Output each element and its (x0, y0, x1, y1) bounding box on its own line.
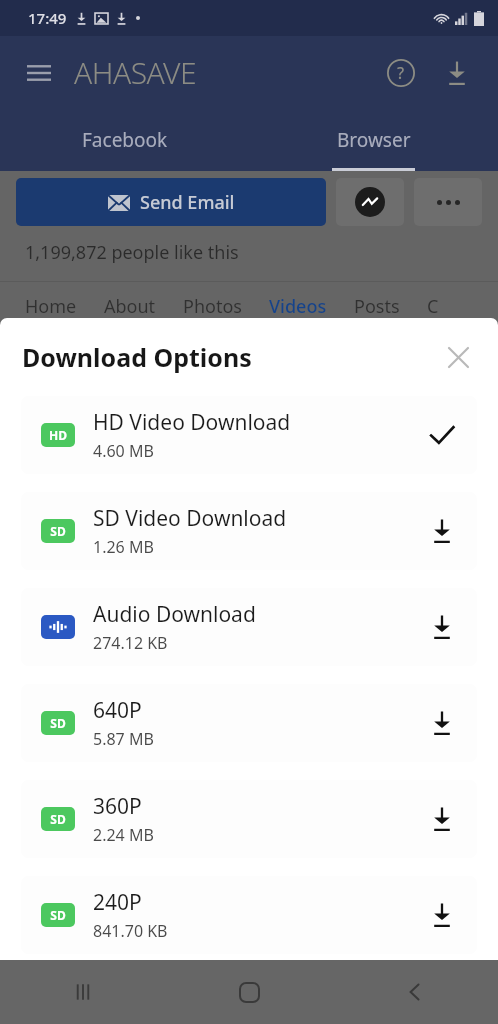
staticText: HD (49, 427, 67, 443)
button[interactable]: Recents (0, 960, 166, 1024)
button[interactable]: Home (166, 960, 332, 1024)
staticText: 841.70 KB (93, 920, 168, 942)
staticText: Facebook (82, 127, 168, 153)
other: Download (413, 790, 471, 848)
button[interactable]: SD (21, 492, 477, 570)
staticText: 640P (93, 696, 142, 725)
staticText: 360P (93, 792, 142, 821)
button[interactable]: SD (21, 684, 477, 762)
staticText: SD (50, 715, 66, 731)
staticText: 1,199,872 people like this (25, 240, 239, 265)
button[interactable]: Help (382, 54, 420, 92)
staticText: SD (50, 523, 66, 539)
staticText: HD Video Download (93, 408, 291, 437)
other: Download (413, 694, 471, 752)
button[interactable]: Audio Download (21, 588, 477, 666)
button[interactable]: SD (21, 876, 477, 954)
staticText: Audio Download (93, 600, 256, 629)
other: Download (413, 886, 471, 944)
button[interactable]: Send Email (16, 178, 326, 226)
staticText: Send Email (140, 190, 235, 215)
button[interactable]: Messenger (336, 178, 404, 226)
button[interactable]: Close (438, 337, 478, 377)
staticText: Photos (183, 294, 242, 319)
staticText: Download Options (22, 340, 252, 374)
staticText: 17:49 (28, 8, 67, 28)
staticText: SD Video Download (93, 504, 287, 533)
staticText: Home (25, 294, 77, 319)
button[interactable]: Menu (22, 56, 56, 90)
staticText: SD (50, 811, 66, 827)
staticText: 240P (93, 888, 142, 917)
staticText: SD (50, 907, 66, 923)
other: Download (413, 598, 471, 656)
button[interactable]: Facebook (0, 109, 249, 171)
button[interactable]: HD (21, 396, 477, 474)
staticText: About (104, 294, 156, 319)
button[interactable]: Downloads (438, 54, 476, 92)
button[interactable]: Browser (249, 109, 498, 171)
staticText: AHASAVE (74, 52, 197, 93)
other: Selected (413, 406, 471, 464)
staticText: 2.24 MB (93, 824, 154, 846)
other: Download (413, 502, 471, 560)
staticText: Videos (269, 294, 327, 319)
staticText: C (427, 294, 439, 319)
staticText: ? (397, 62, 405, 84)
staticText: Posts (354, 294, 400, 319)
button[interactable]: More options (414, 178, 482, 226)
staticText: 4.60 MB (93, 440, 154, 462)
staticText: Browser (337, 127, 411, 153)
button[interactable]: SD (21, 780, 477, 858)
staticText: 1.26 MB (93, 536, 154, 558)
staticText: 274.12 KB (93, 632, 168, 654)
staticText: 5.87 MB (93, 728, 154, 750)
